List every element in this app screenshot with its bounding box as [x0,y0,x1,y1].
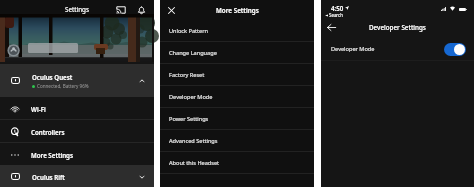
staticText: Developer Settings [369,23,426,32]
button[interactable]: Unlock Pattern [160,20,314,42]
button[interactable]: Oculus Rift [0,165,154,187]
staticText: Developer Mode [331,45,375,53]
staticText: Controllers [31,128,65,136]
staticText: Developer Mode [169,93,213,101]
staticText: Oculus Rift [32,173,65,181]
button[interactable]: Factory Reset [160,64,314,86]
staticText: Power Settings [169,115,209,123]
button[interactable]: Back [327,24,336,31]
button[interactable]: Cast [116,6,126,14]
button[interactable]: Developer Mode [321,37,474,61]
staticText: Settings [65,5,89,14]
button[interactable]: Close [165,4,178,17]
staticText: Search [329,12,343,18]
button[interactable]: Advanced Settings [160,130,314,152]
staticText: Unlock Pattern [169,27,208,35]
staticText: About this Headset [169,159,220,167]
button[interactable]: Controllers [0,120,154,143]
staticText: Factory Reset [169,71,205,79]
staticText: Wi-Fi [31,105,46,113]
button[interactable]: More Settings [0,143,154,166]
button[interactable]: Wi-Fi [0,97,154,120]
staticText: More Settings [216,6,259,15]
button[interactable]: Power Settings [160,108,314,130]
button[interactable]: Change Language [160,42,314,64]
staticText: Oculus Quest [32,73,73,81]
button[interactable]: About this Headset [160,152,314,174]
staticText: More Settings [31,151,74,159]
button[interactable]: Developer Mode toggle [444,43,466,56]
button[interactable]: Developer Mode [160,86,314,108]
button[interactable]: Notifications [138,6,145,14]
button[interactable]: Oculus Quest [0,64,154,97]
staticText: Change Language [169,49,217,57]
staticText: 4:50 [331,4,344,12]
staticText: Connected, Battery 96% [37,83,89,89]
staticText: Advanced Settings [169,137,218,145]
